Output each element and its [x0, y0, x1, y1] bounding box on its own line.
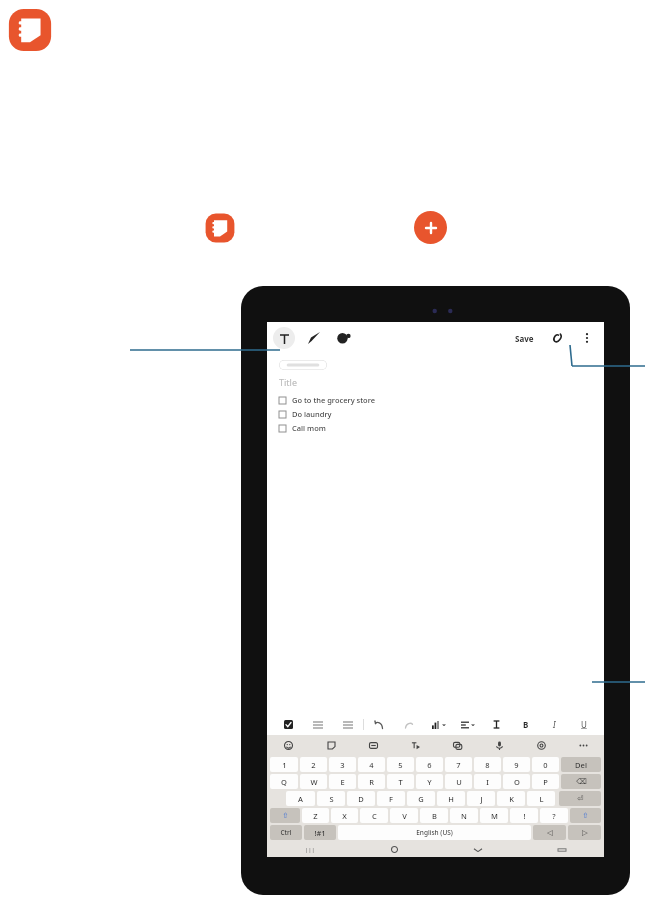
- button[interactable]: 1: [270, 757, 298, 772]
- button[interactable]: ◁: [533, 825, 566, 840]
- button[interactable]: R: [358, 774, 385, 789]
- button[interactable]: B: [420, 808, 448, 823]
- button[interactable]: [424, 714, 453, 735]
- button[interactable]: H: [437, 791, 465, 806]
- button[interactable]: U: [569, 714, 598, 735]
- staticText: A: [298, 794, 303, 804]
- button[interactable]: Handwriting: [394, 735, 436, 755]
- staticText: H: [448, 794, 454, 804]
- button[interactable]: V: [390, 808, 418, 823]
- button[interactable]: English (US): [338, 825, 531, 840]
- button[interactable]: W: [300, 774, 327, 789]
- button[interactable]: Stickers: [310, 735, 352, 755]
- staticText: Del: [575, 760, 587, 770]
- button[interactable]: Samsung Notes: [8, 8, 52, 52]
- button[interactable]: !#1: [304, 825, 336, 840]
- button[interactable]: ⏎: [559, 791, 601, 806]
- button[interactable]: Save: [513, 333, 536, 344]
- button[interactable]: N: [450, 808, 478, 823]
- button[interactable]: Home: [352, 842, 436, 857]
- button[interactable]: Create note: [414, 211, 447, 244]
- button[interactable]: 4: [358, 757, 385, 772]
- button[interactable]: [482, 714, 511, 735]
- staticText: ◁: [547, 828, 553, 837]
- button[interactable]: E: [329, 774, 356, 789]
- button[interactable]: T: [387, 774, 414, 789]
- button[interactable]: !: [510, 808, 538, 823]
- staticText: English (US): [416, 828, 453, 837]
- staticText: 3: [340, 760, 345, 770]
- button[interactable]: L: [527, 791, 555, 806]
- button[interactable]: Call mom: [279, 421, 326, 435]
- button[interactable]: Del: [561, 757, 601, 772]
- button[interactable]: Redo: [394, 714, 424, 735]
- button[interactable]: Clipboard: [352, 735, 394, 755]
- button[interactable]: A: [286, 791, 315, 806]
- button[interactable]: K: [497, 791, 525, 806]
- button[interactable]: F: [377, 791, 405, 806]
- button[interactable]: ⇧: [570, 808, 601, 823]
- button[interactable]: 6: [416, 757, 443, 772]
- button[interactable]: J: [467, 791, 495, 806]
- button[interactable]: S: [317, 791, 345, 806]
- button[interactable]: Attach: [548, 329, 566, 347]
- button[interactable]: I: [540, 714, 569, 735]
- button[interactable]: [453, 714, 482, 735]
- button[interactable]: More: [562, 735, 604, 755]
- button[interactable]: More options: [578, 329, 596, 347]
- button[interactable]: Undo: [364, 714, 394, 735]
- staticText: O: [514, 777, 520, 787]
- button[interactable]: 9: [503, 757, 530, 772]
- button[interactable]: 3: [329, 757, 356, 772]
- button[interactable]: O: [503, 774, 530, 789]
- button[interactable]: Settings: [520, 735, 562, 755]
- staticText: U: [456, 777, 462, 787]
- button[interactable]: G: [407, 791, 435, 806]
- button[interactable]: B: [511, 714, 540, 735]
- button[interactable]: Ctrl: [270, 825, 302, 840]
- staticText: B: [432, 811, 437, 821]
- button[interactable]: Translate: [436, 735, 478, 755]
- button[interactable]: ⌫: [561, 774, 601, 789]
- button[interactable]: Recents: [267, 842, 352, 857]
- button[interactable]: Emoji: [267, 735, 310, 755]
- button[interactable]: Y: [416, 774, 443, 789]
- button[interactable]: [333, 714, 363, 735]
- staticText: Q: [281, 777, 287, 787]
- button[interactable]: Pen: [304, 328, 324, 348]
- button[interactable]: 5: [387, 757, 414, 772]
- button[interactable]: C: [360, 808, 388, 823]
- button[interactable]: Z: [302, 808, 329, 823]
- staticText: 2: [311, 760, 316, 770]
- button[interactable]: [303, 714, 333, 735]
- button[interactable]: ▷: [568, 825, 601, 840]
- staticText: |||: [305, 846, 315, 854]
- button[interactable]: ?: [540, 808, 568, 823]
- button[interactable]: 8: [474, 757, 501, 772]
- button[interactable]: 0: [532, 757, 559, 772]
- button[interactable]: 2: [300, 757, 327, 772]
- button[interactable]: Voice input: [478, 735, 520, 755]
- button[interactable]: Keyboard layout: [520, 842, 604, 857]
- button[interactable]: ⇧: [270, 808, 300, 823]
- button[interactable]: D: [347, 791, 375, 806]
- button[interactable]: Samsung Notes: [205, 213, 235, 243]
- button[interactable]: Go to the grocery store: [279, 393, 375, 407]
- staticText: D: [358, 794, 364, 804]
- button[interactable]: [279, 360, 327, 370]
- staticText: Save: [515, 333, 534, 344]
- button[interactable]: Q: [270, 774, 298, 789]
- button[interactable]: U: [445, 774, 472, 789]
- button[interactable]: P: [532, 774, 559, 789]
- button[interactable]: Do laundry: [279, 407, 332, 421]
- button[interactable]: I: [474, 774, 501, 789]
- staticText: ?: [552, 811, 556, 821]
- button[interactable]: X: [331, 808, 358, 823]
- button[interactable]: M: [480, 808, 508, 823]
- staticText: 4: [369, 760, 374, 770]
- button[interactable]: Hide keyboard: [436, 842, 520, 857]
- button[interactable]: Brush: [333, 328, 353, 348]
- button[interactable]: Text mode: [273, 327, 295, 349]
- button[interactable]: 7: [445, 757, 472, 772]
- button[interactable]: [273, 714, 303, 735]
